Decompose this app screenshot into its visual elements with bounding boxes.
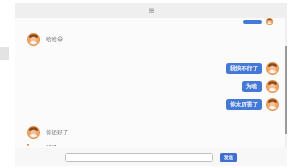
staticText: 你太厉害了	[230, 101, 258, 108]
staticText: 哈哈😄	[46, 36, 64, 43]
button[interactable]: 好了	[27, 144, 58, 146]
staticText: 你还好了	[46, 129, 69, 136]
staticText: 发送	[224, 155, 234, 161]
button[interactable]: Message input	[65, 153, 213, 162]
staticText: 好了	[46, 144, 58, 146]
button[interactable]: 你还好了	[27, 126, 69, 139]
staticText: 我快不行了	[230, 65, 258, 72]
button[interactable]: 为啥	[15, 80, 279, 93]
button[interactable]: 哈哈😄	[27, 33, 64, 46]
button[interactable]: Menu	[15, 3, 287, 18]
button[interactable]	[15, 18, 279, 25]
staticText: 为啥	[246, 83, 258, 90]
button[interactable]: 你太厉害了	[15, 98, 279, 111]
button[interactable]: 我快不行了	[15, 62, 279, 75]
button[interactable]: 发送	[220, 153, 237, 162]
